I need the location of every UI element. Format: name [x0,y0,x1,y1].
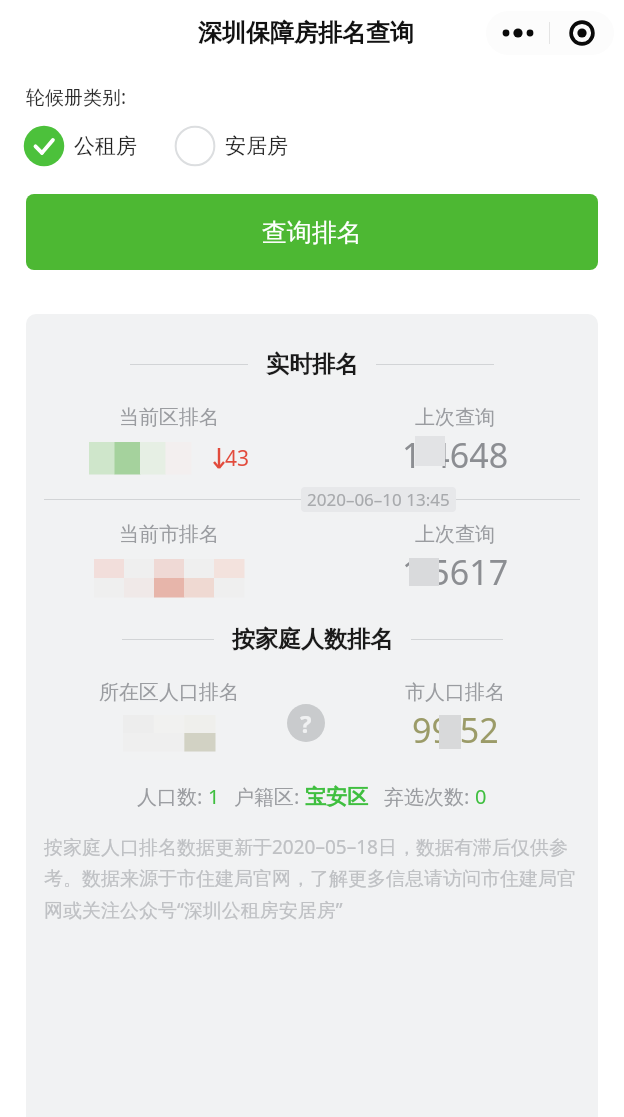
staticText: 弃选次数: [384,783,475,810]
staticText: 99 52 [412,707,499,753]
button[interactable]: 公租房 [22,124,137,168]
staticText: 查询排名 [262,217,362,248]
staticText: 1 5617 [402,549,509,595]
staticText: 轮候册类别: [26,84,127,110]
staticText: 1 [208,783,220,810]
staticText: 43 [225,444,250,473]
staticText: 实时排名 [266,350,358,379]
staticText: 0 [475,783,487,810]
staticText: ? [300,707,312,740]
button[interactable]: More options [486,11,614,55]
staticText: 2020–06–10 13:45 [307,488,450,511]
staticText: 当前市排名 [119,522,219,547]
staticText: 上次查询 [415,405,495,430]
staticText: 公租房 [74,133,137,159]
staticText: 1 4648 [402,432,509,478]
staticText: 宝安区 [305,784,368,810]
staticText: 安居房 [225,133,288,159]
staticText: 人口数: [137,783,208,810]
button[interactable]: 安居房 [173,124,288,168]
button[interactable]: Help [287,704,325,742]
staticText: 按家庭人数排名 [232,625,393,654]
staticText: 按家庭人口排名数据更新于2020–05–18日，数据有滞后仅供参考。数据来源于市… [44,834,580,923]
staticText: 户籍区: [234,783,305,810]
staticText: 深圳保障房排名查询 [198,18,414,48]
staticText: 当前区排名 [119,405,219,430]
staticText: 所在区人口排名 [99,680,239,705]
staticText: 市人口排名 [405,680,505,705]
staticText: 上次查询 [415,522,495,547]
button[interactable]: 查询排名 [26,194,598,270]
